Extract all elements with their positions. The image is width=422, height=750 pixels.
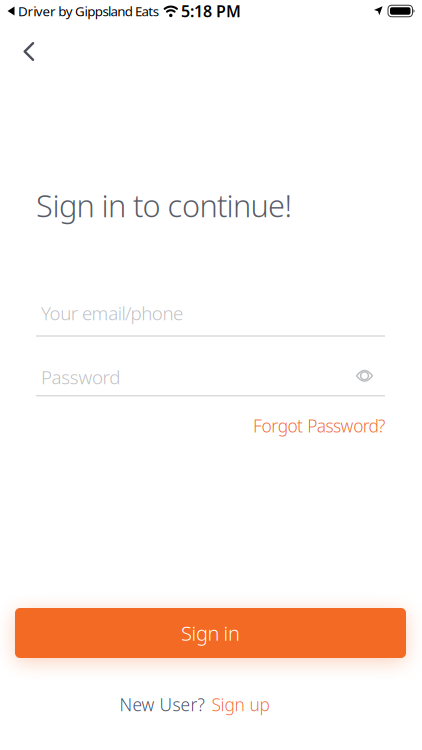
button[interactable]: Forgot Password? bbox=[253, 414, 385, 437]
button[interactable]: Show password bbox=[354, 369, 375, 383]
button[interactable]: Return to Driver by Gippsland Eats bbox=[7, 2, 159, 20]
staticText: New User? bbox=[119, 693, 204, 716]
staticText: 5:18 PM bbox=[181, 0, 241, 22]
staticText: Your email/phone bbox=[41, 301, 183, 325]
button[interactable]: Back bbox=[14, 42, 44, 61]
staticText: Sign in bbox=[181, 620, 240, 646]
button[interactable]: Sign in bbox=[15, 608, 406, 658]
staticText: Password bbox=[41, 364, 120, 389]
staticText: Sign up bbox=[211, 693, 269, 716]
staticText: Driver by Gippsland Eats bbox=[18, 2, 159, 20]
staticText: Forgot Password? bbox=[253, 414, 385, 437]
button[interactable]: Sign up bbox=[211, 693, 269, 716]
staticText: Sign in to continue! bbox=[36, 185, 292, 226]
